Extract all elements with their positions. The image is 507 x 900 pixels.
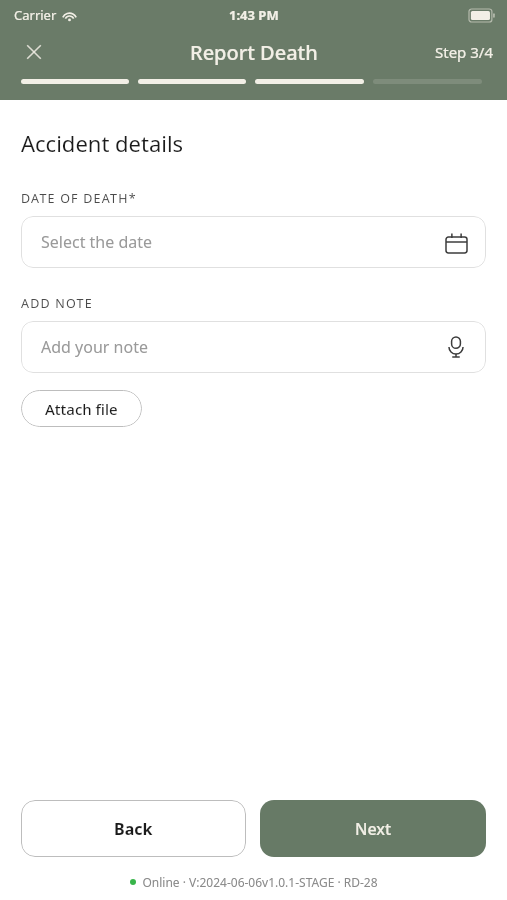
button[interactable]: Next [260,800,486,857]
button[interactable]: Back [21,800,246,857]
staticText: Attach file [45,399,118,419]
staticText: Online · V:2024-06-06v1.0.1-STAGE · RD-2… [142,874,378,890]
staticText: Back [114,818,153,840]
button[interactable]: Attach file [21,390,142,427]
button[interactable]: Select the date [21,216,486,268]
staticText: Next [355,818,392,840]
button[interactable]: Close [12,30,56,74]
button[interactable]: Add your note [21,321,486,373]
staticText: ADD NOTE [21,295,93,312]
staticText: Report Death [190,39,318,66]
staticText: 1:43 PM [229,6,279,24]
staticText: Carrier [14,6,57,24]
staticText: DATE OF DEATH* [21,190,137,207]
staticText: Step 3/4 [435,42,493,62]
staticText: Select the date [41,231,153,253]
staticText: Accident details [21,128,184,158]
staticText: Add your note [41,336,148,358]
